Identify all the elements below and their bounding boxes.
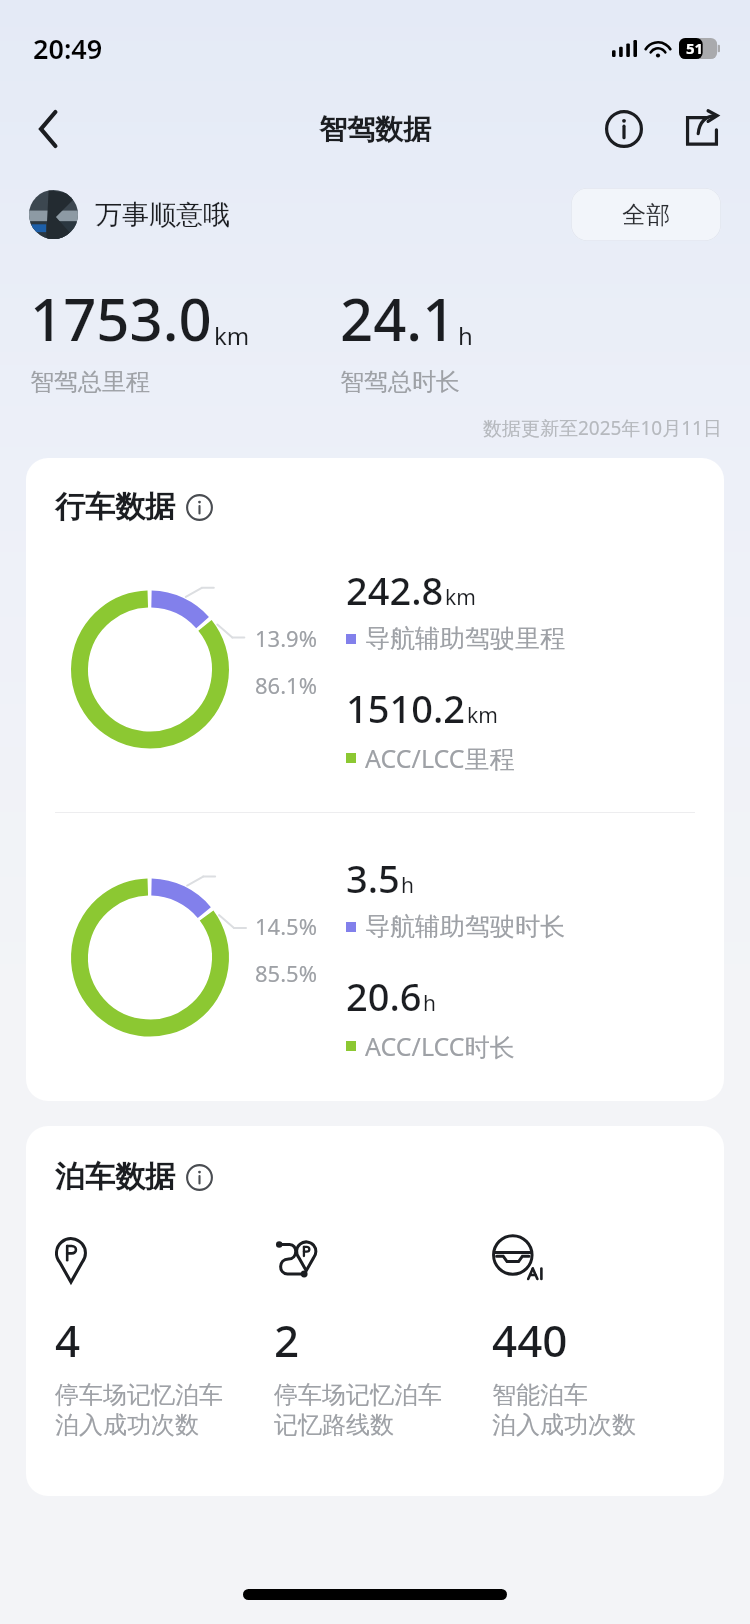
- button[interactable]: Smart parking: [492, 1238, 710, 1440]
- staticText: 泊入成功次数: [55, 1410, 199, 1440]
- staticText: 1510.2: [346, 682, 466, 734]
- staticText: 行车数据: [55, 488, 175, 526]
- button[interactable]: Share: [674, 101, 730, 157]
- staticText: 全部: [622, 200, 670, 230]
- staticText: 20:49: [33, 30, 103, 67]
- staticText: 智驾总里程: [30, 367, 150, 397]
- button[interactable]: Info: [596, 101, 652, 157]
- staticText: 242.8: [346, 564, 444, 616]
- staticText: km: [467, 701, 498, 730]
- staticText: 记忆路线数: [274, 1410, 394, 1440]
- staticText: km: [214, 319, 250, 352]
- staticText: ACC/LCC时长: [365, 1029, 515, 1063]
- other: Memory parking: [55, 1238, 107, 1288]
- other: Memory route: [274, 1238, 326, 1288]
- staticText: 泊车数据: [55, 1158, 175, 1196]
- staticText: h: [401, 871, 414, 900]
- staticText: 停车场记忆泊车: [55, 1380, 223, 1410]
- staticText: 3.5: [346, 852, 400, 904]
- staticText: 86.1%: [255, 670, 317, 700]
- staticText: 51: [686, 38, 704, 58]
- button[interactable]: 泊车数据: [55, 1158, 213, 1196]
- button[interactable]: 行车数据: [55, 488, 213, 526]
- staticText: 20.6: [346, 970, 422, 1022]
- staticText: h: [458, 319, 473, 352]
- staticText: h: [423, 989, 436, 1018]
- button[interactable]: 万事顺意哦: [29, 190, 230, 239]
- staticText: 85.5%: [255, 958, 317, 988]
- staticText: 导航辅助驾驶时长: [365, 911, 565, 942]
- staticText: 1753.0: [30, 279, 212, 358]
- staticText: 万事顺意哦: [95, 198, 230, 232]
- other: Smart parking: [492, 1238, 544, 1288]
- button[interactable]: Memory parking: [55, 1238, 274, 1440]
- staticText: 智驾总时长: [340, 367, 460, 397]
- staticText: 13.9%: [255, 623, 317, 653]
- staticText: 4: [55, 1310, 81, 1370]
- staticText: 智驾数据: [319, 112, 431, 147]
- button[interactable]: 全部: [571, 188, 721, 241]
- staticText: 智能泊车: [492, 1380, 588, 1410]
- staticText: km: [445, 583, 476, 612]
- staticText: 2: [274, 1310, 300, 1370]
- staticText: 导航辅助驾驶里程: [365, 623, 565, 654]
- staticText: 数据更新至2025年10月11日: [483, 415, 722, 441]
- staticText: 440: [492, 1310, 568, 1370]
- button[interactable]: Memory route: [274, 1238, 492, 1440]
- staticText: 泊入成功次数: [492, 1410, 636, 1440]
- button[interactable]: Back: [20, 100, 78, 158]
- other: Info: [186, 1164, 213, 1191]
- staticText: 14.5%: [255, 911, 317, 941]
- staticText: 停车场记忆泊车: [274, 1380, 442, 1410]
- other: Info: [186, 494, 213, 521]
- staticText: 24.1: [340, 279, 456, 358]
- staticText: ACC/LCC里程: [365, 741, 515, 775]
